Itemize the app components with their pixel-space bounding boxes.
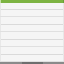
button[interactable] — [0, 47, 64, 61]
button[interactable] — [0, 3, 64, 16]
button[interactable]: Bottom navigation — [0, 62, 64, 64]
button[interactable]: Top app bar — [0, 0, 64, 3]
button[interactable] — [0, 17, 64, 31]
button[interactable] — [0, 32, 64, 46]
